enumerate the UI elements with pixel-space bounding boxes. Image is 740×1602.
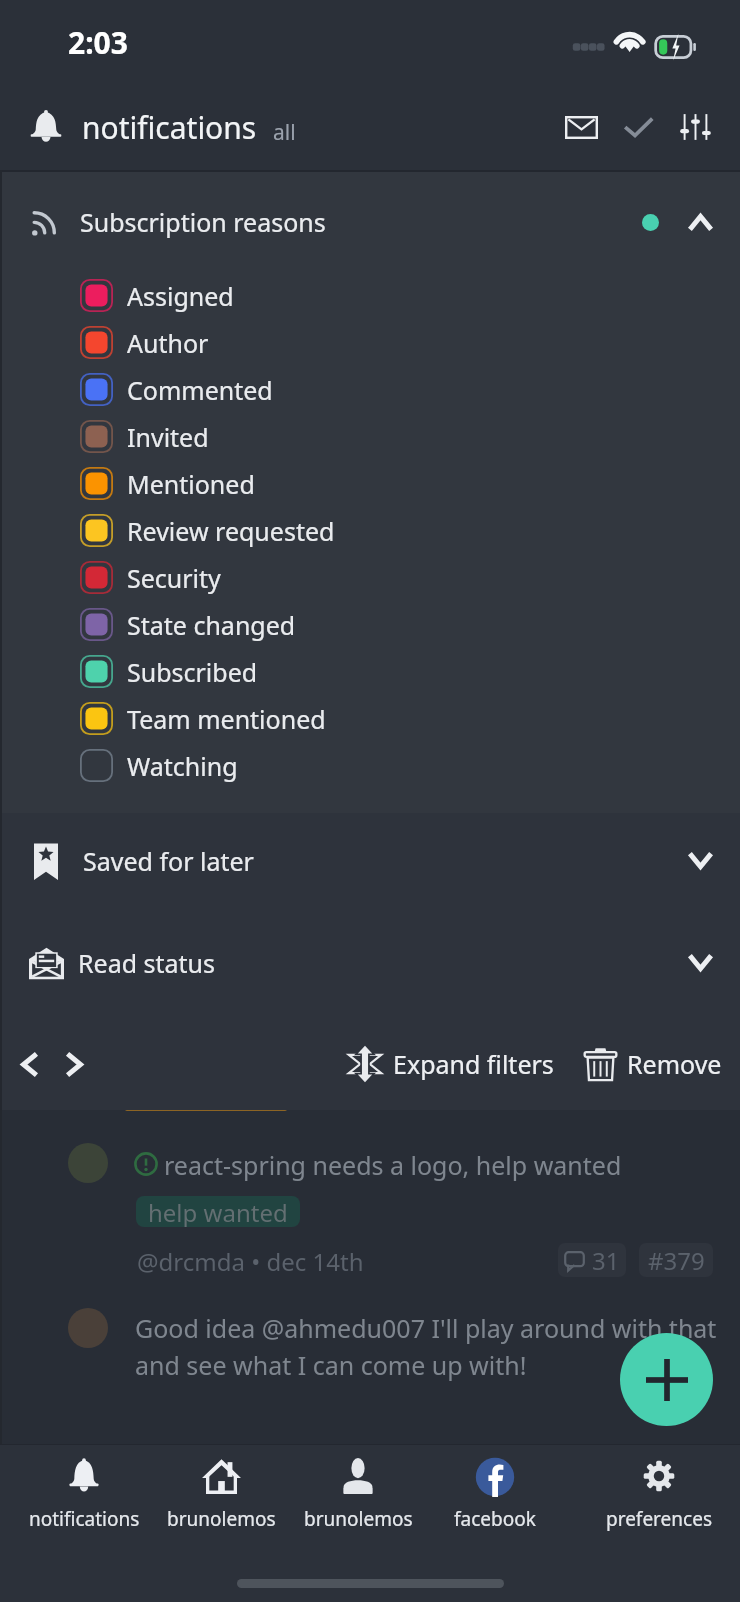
- button[interactable]: Add: [620, 1333, 713, 1426]
- button[interactable]: Expand filters: [343, 1033, 558, 1095]
- button[interactable]: Review requested: [0, 507, 740, 554]
- button[interactable]: Team mentioned: [0, 695, 740, 742]
- button[interactable]: Subscribed: [0, 648, 740, 695]
- staticText: Author: [127, 326, 209, 360]
- staticText: Commented: [127, 373, 273, 407]
- staticText: react-spring needs a logo, help wanted: [164, 1148, 622, 1182]
- button[interactable]: Saved for later: [0, 813, 740, 908]
- button[interactable]: Read status: [0, 908, 740, 1018]
- button[interactable]: Author: [0, 319, 740, 366]
- button[interactable]: Filters: [667, 92, 724, 162]
- staticText: help wanted: [148, 1196, 288, 1227]
- staticText: facebook: [454, 1506, 536, 1532]
- staticText: Review requested: [127, 514, 335, 548]
- staticText: Saved for later: [83, 844, 254, 878]
- staticText: brunolemos: [167, 1506, 276, 1532]
- staticText: notifications: [29, 1506, 140, 1532]
- button[interactable]: Commented: [0, 366, 740, 413]
- button[interactable]: Next: [53, 1031, 97, 1097]
- button[interactable]: notifications: [14, 1455, 154, 1532]
- staticText: Invited: [127, 420, 209, 454]
- staticText: Security: [127, 561, 221, 595]
- staticText: @drcmda • dec 14th: [137, 1245, 364, 1278]
- button[interactable]: Watching: [0, 742, 740, 789]
- staticText: 2:03: [68, 22, 128, 63]
- button[interactable]: Subscription reasons: [0, 172, 740, 272]
- button[interactable]: Mark as unread: [553, 92, 610, 162]
- staticText: #379: [648, 1244, 705, 1277]
- staticText: Watching: [127, 749, 238, 783]
- staticText: brunolemos: [304, 1506, 413, 1532]
- staticText: State changed: [127, 608, 296, 642]
- button[interactable]: brunolemos: [151, 1455, 291, 1532]
- staticText: Subscription reasons: [80, 205, 326, 239]
- staticText: Mentioned: [127, 467, 255, 501]
- button[interactable]: Assigned: [0, 272, 740, 319]
- button[interactable]: Security: [0, 554, 740, 601]
- staticText: and see what I can come up with!: [135, 1348, 527, 1382]
- button[interactable]: Mentioned: [0, 460, 740, 507]
- staticText: Read status: [78, 946, 216, 980]
- button[interactable]: Invited: [0, 413, 740, 460]
- staticText: all: [273, 118, 296, 147]
- staticText: preferences: [606, 1506, 712, 1532]
- button[interactable]: Remove: [580, 1034, 726, 1094]
- button[interactable]: State changed: [0, 601, 740, 648]
- staticText: Assigned: [127, 279, 234, 313]
- staticText: Team mentioned: [127, 702, 326, 736]
- button[interactable]: Mark all as read: [610, 92, 667, 162]
- button[interactable]: brunolemos: [288, 1455, 428, 1532]
- staticText: Remove: [627, 1047, 722, 1081]
- button[interactable]: preferences: [589, 1455, 729, 1532]
- button[interactable]: Previous: [7, 1031, 51, 1097]
- staticText: Subscribed: [127, 655, 258, 689]
- staticText: Expand filters: [393, 1047, 554, 1081]
- button[interactable]: facebook: [425, 1455, 565, 1532]
- staticText: 31: [592, 1244, 620, 1277]
- staticText: Good idea @ahmedu007 I'll play around wi…: [135, 1311, 717, 1345]
- staticText: notifications: [82, 107, 257, 148]
